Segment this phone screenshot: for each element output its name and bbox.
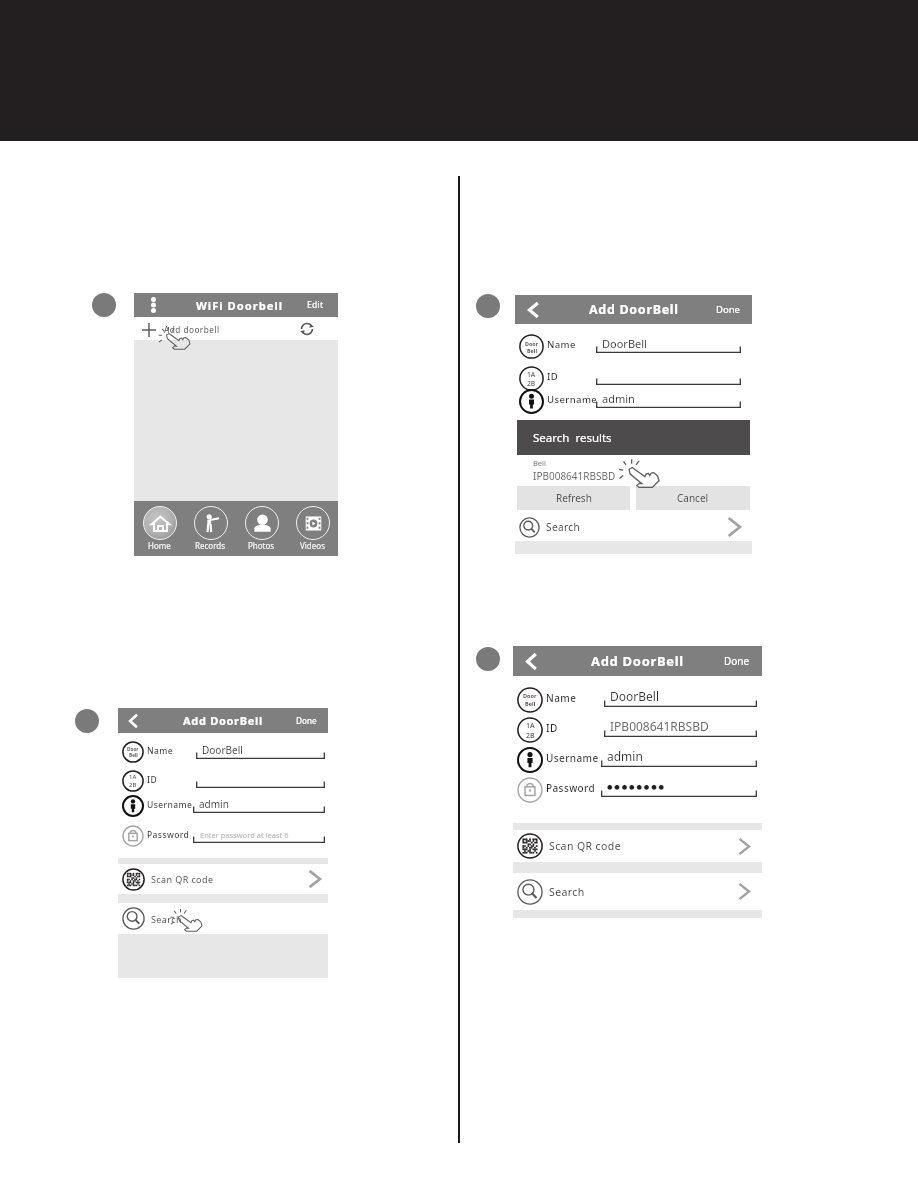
staticText: DoorBell xyxy=(202,743,243,757)
button[interactable]: Refresh xyxy=(298,320,315,337)
staticText: 2B xyxy=(527,379,536,388)
staticText: DoorBell xyxy=(610,688,659,704)
button[interactable]: Back xyxy=(118,708,148,733)
staticText: Add DoorBell xyxy=(183,713,263,728)
staticText: Bell xyxy=(527,347,537,354)
button[interactable]: Password field xyxy=(513,772,762,802)
staticText: Home xyxy=(148,540,171,551)
staticText: Password xyxy=(546,781,596,795)
button[interactable]: Refresh xyxy=(517,486,630,510)
button[interactable]: Videos xyxy=(287,501,338,551)
staticText: Bell xyxy=(533,458,546,468)
staticText: 1A xyxy=(526,720,535,730)
button[interactable]: Username field xyxy=(513,742,762,772)
staticText: IPB008641RBSBD xyxy=(610,718,709,734)
staticText: Name xyxy=(547,338,576,351)
button[interactable]: Back xyxy=(513,646,549,676)
staticText: Door xyxy=(525,340,539,347)
button[interactable]: Back xyxy=(515,295,550,324)
button[interactable]: Done xyxy=(285,708,328,733)
button[interactable]: Done xyxy=(703,295,752,324)
staticText: DoorBell xyxy=(602,336,647,351)
button[interactable]: More options xyxy=(143,293,163,317)
staticText: Add DoorBell xyxy=(589,301,679,318)
staticText: Username xyxy=(147,799,193,811)
staticText: Add doorbell xyxy=(164,324,220,335)
button[interactable]: Search xyxy=(513,873,762,910)
staticText: Scan QR code xyxy=(549,839,621,853)
button[interactable]: Bell xyxy=(515,455,752,486)
button[interactable]: Add doorbell xyxy=(134,317,338,340)
button[interactable]: Search xyxy=(118,903,328,934)
button[interactable]: Username field xyxy=(515,383,752,413)
staticText: Done xyxy=(296,715,317,726)
staticText: admin xyxy=(607,748,643,764)
staticText: Search results xyxy=(533,430,612,446)
staticText: Name xyxy=(147,745,173,757)
button[interactable]: Password field xyxy=(118,818,328,848)
button[interactable]: Home xyxy=(134,501,185,551)
staticText: Edit xyxy=(307,299,324,311)
staticText: Scan QR code xyxy=(151,873,214,885)
staticText: Door xyxy=(523,692,537,700)
staticText: Done xyxy=(724,654,750,668)
staticText: Records xyxy=(195,540,226,551)
staticText: Videos xyxy=(300,540,325,551)
staticText: ● ● ● ● ● ● ● ● xyxy=(607,782,665,791)
staticText: Search xyxy=(151,913,182,925)
staticText: admin xyxy=(602,391,635,406)
staticText: Bell xyxy=(525,700,536,708)
staticText: Password xyxy=(147,829,190,841)
button[interactable]: Scan QR code xyxy=(118,864,328,894)
button[interactable]: Cancel xyxy=(636,486,750,510)
staticText: Bell xyxy=(129,752,138,758)
button[interactable]: ID field xyxy=(118,763,328,793)
button[interactable]: Name field xyxy=(515,328,752,358)
staticText: 1A xyxy=(527,370,536,379)
staticText: IPB008641RBSBD xyxy=(533,469,616,483)
staticText: Done xyxy=(716,303,740,316)
staticText: Search xyxy=(546,520,581,534)
staticText: Username xyxy=(547,393,598,406)
button[interactable]: Name field xyxy=(513,682,762,712)
staticText: Add DoorBell xyxy=(591,652,684,670)
staticText: Search xyxy=(549,885,585,899)
button[interactable]: Photos xyxy=(236,501,287,551)
button[interactable]: Edit xyxy=(304,293,338,317)
button[interactable]: ID field xyxy=(515,360,752,390)
staticText: admin xyxy=(199,797,229,811)
staticText: Door xyxy=(127,746,139,752)
staticText: WiFi Doorbell xyxy=(196,298,284,313)
button[interactable]: Scan QR code xyxy=(513,830,762,862)
staticText: Name xyxy=(546,691,577,705)
button[interactable]: Name field xyxy=(118,734,328,764)
staticText: Cancel xyxy=(677,491,709,505)
button[interactable]: Done xyxy=(711,646,762,676)
staticText: Enter password at least 6 xyxy=(200,830,289,840)
button[interactable]: Records xyxy=(185,501,236,551)
staticText: ID xyxy=(547,370,559,383)
staticText: ID xyxy=(546,721,558,735)
staticText: 2B xyxy=(526,730,535,740)
staticText: 2B xyxy=(129,781,137,789)
staticText: Photos xyxy=(248,540,275,551)
staticText: 1A xyxy=(129,773,137,781)
staticText: ID xyxy=(147,774,158,786)
button[interactable]: Search xyxy=(515,513,752,541)
button[interactable]: ID field xyxy=(513,712,762,742)
staticText: Refresh xyxy=(556,491,592,505)
staticText: Username xyxy=(546,751,599,765)
button[interactable]: Username field xyxy=(118,788,328,818)
